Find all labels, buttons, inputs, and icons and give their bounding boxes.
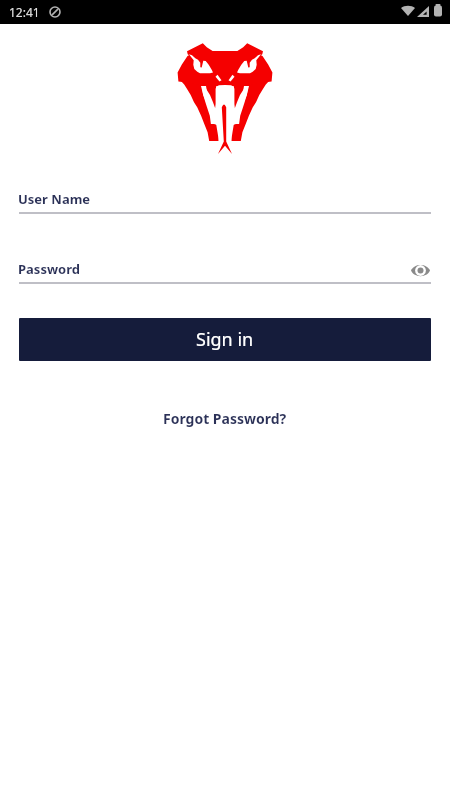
staticText: Password — [18, 260, 80, 278]
staticText: Sign in — [196, 327, 254, 352]
button[interactable]: Forgot Password? — [156, 402, 294, 434]
button[interactable]: Sign in — [19, 318, 431, 361]
staticText: User Name — [18, 190, 91, 208]
staticText: 12:41 — [9, 4, 40, 20]
button[interactable]: Show password — [406, 256, 434, 284]
staticText: Forgot Password? — [163, 409, 287, 428]
